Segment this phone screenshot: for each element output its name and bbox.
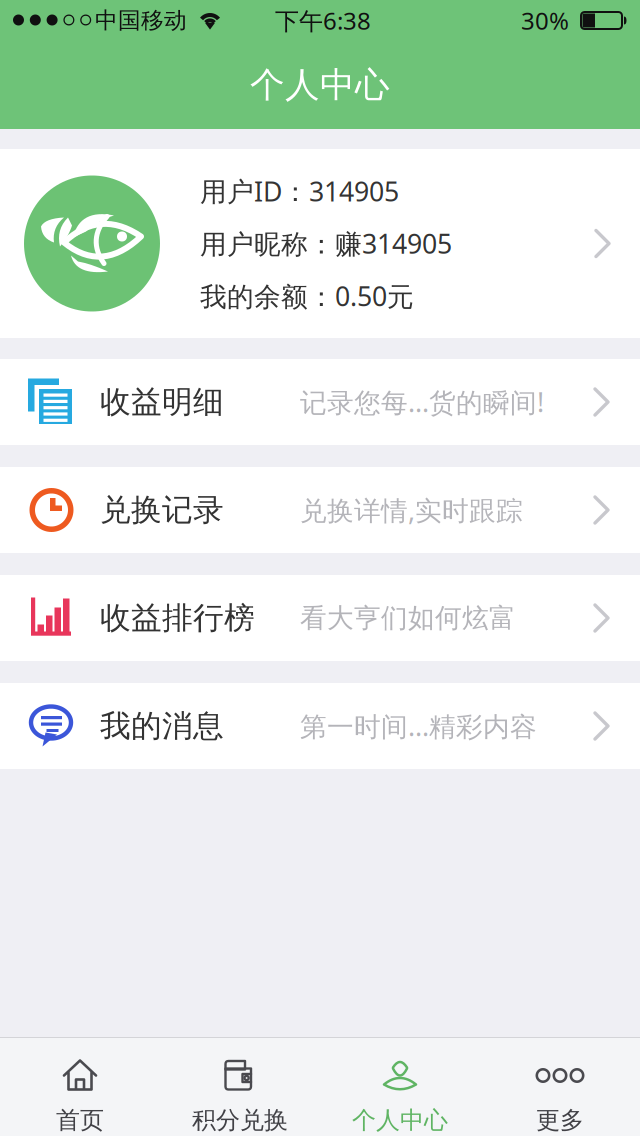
staticText: 我的消息 (100, 707, 224, 745)
staticText: 首页 (56, 1105, 104, 1135)
staticText: 我的余额：0.50元 (200, 278, 414, 314)
staticText: 30% (521, 5, 569, 36)
staticText: 第一时间...精彩内容 (300, 708, 537, 744)
button[interactable]: 收益明细 (0, 359, 640, 445)
button[interactable]: 兑换记录 (0, 467, 640, 553)
staticText: 记录您每...货的瞬间! (300, 384, 544, 420)
button[interactable]: 用户ID：314905 (0, 149, 640, 338)
button[interactable]: 首页 (0, 1037, 160, 1136)
staticText: 下午6:38 (275, 5, 371, 36)
staticText: 积分兑换 (192, 1105, 288, 1135)
staticText: 收益排行榜 (100, 599, 255, 637)
staticText: 兑换详情,实时跟踪 (300, 492, 523, 528)
button[interactable]: 积分兑换 (160, 1037, 320, 1136)
staticText: 个人中心 (352, 1105, 448, 1135)
button[interactable]: 更多 (480, 1037, 640, 1136)
staticText: 个人中心 (250, 64, 390, 106)
button[interactable]: 个人中心 (320, 1037, 480, 1136)
button[interactable]: 收益排行榜 (0, 575, 640, 661)
staticText: 用户昵称：赚314905 (200, 226, 452, 261)
staticText: 更多 (536, 1105, 584, 1135)
staticText: 收益明细 (100, 383, 224, 421)
staticText: 中国移动 (95, 7, 187, 34)
button[interactable]: 我的消息 (0, 683, 640, 769)
staticText: 用户ID：314905 (200, 173, 399, 209)
staticText: 兑换记录 (100, 491, 224, 529)
staticText: 看大亨们如何炫富 (300, 602, 516, 634)
